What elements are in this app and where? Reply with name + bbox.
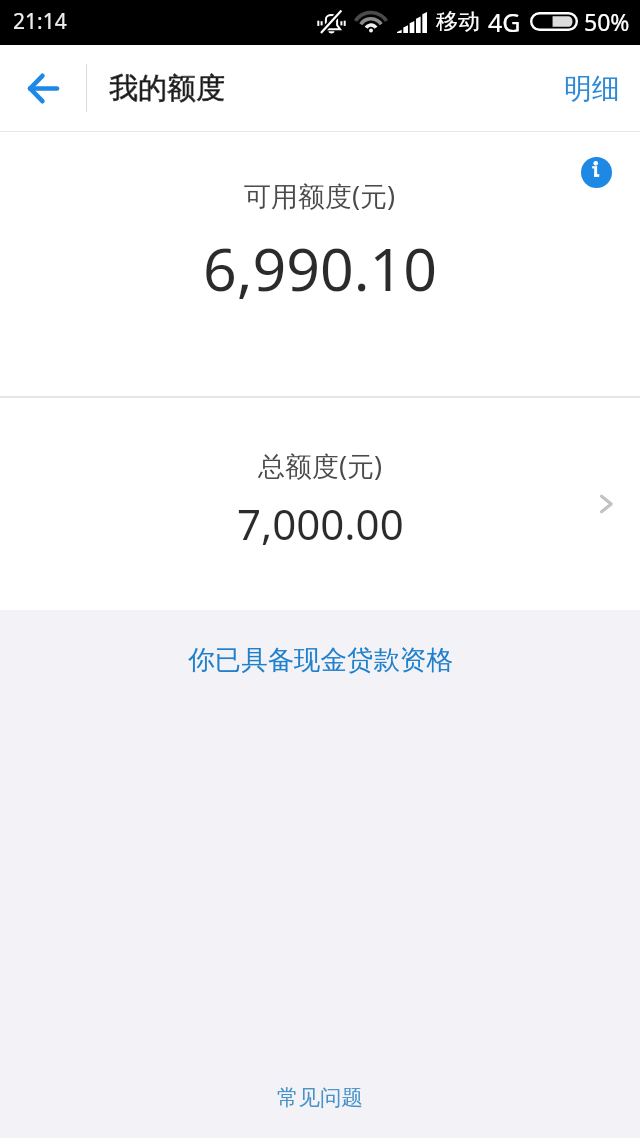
staticText: 移动 [436, 8, 480, 36]
button[interactable]: 总额度(元) [0, 398, 640, 610]
staticText: 50% [584, 6, 630, 37]
button[interactable]: 明细 [538, 51, 640, 126]
staticText: 总额度(元) [258, 447, 383, 484]
staticText: 我的额度 [109, 70, 225, 107]
staticText: 4G [488, 5, 521, 39]
staticText: 我的额度 [109, 70, 225, 107]
button[interactable]: Back [0, 45, 86, 131]
staticText: 7,000.00 [237, 495, 404, 552]
staticText: 6,990.10 [203, 228, 438, 308]
button[interactable]: 常见问题 [277, 1084, 363, 1111]
staticText: 21:14 [13, 7, 67, 36]
staticText: 可用额度(元) [244, 177, 396, 214]
button[interactable]: Information [581, 157, 612, 188]
staticText: 明细 [564, 71, 620, 106]
button[interactable]: 你已具备现金贷款资格 [188, 643, 453, 676]
